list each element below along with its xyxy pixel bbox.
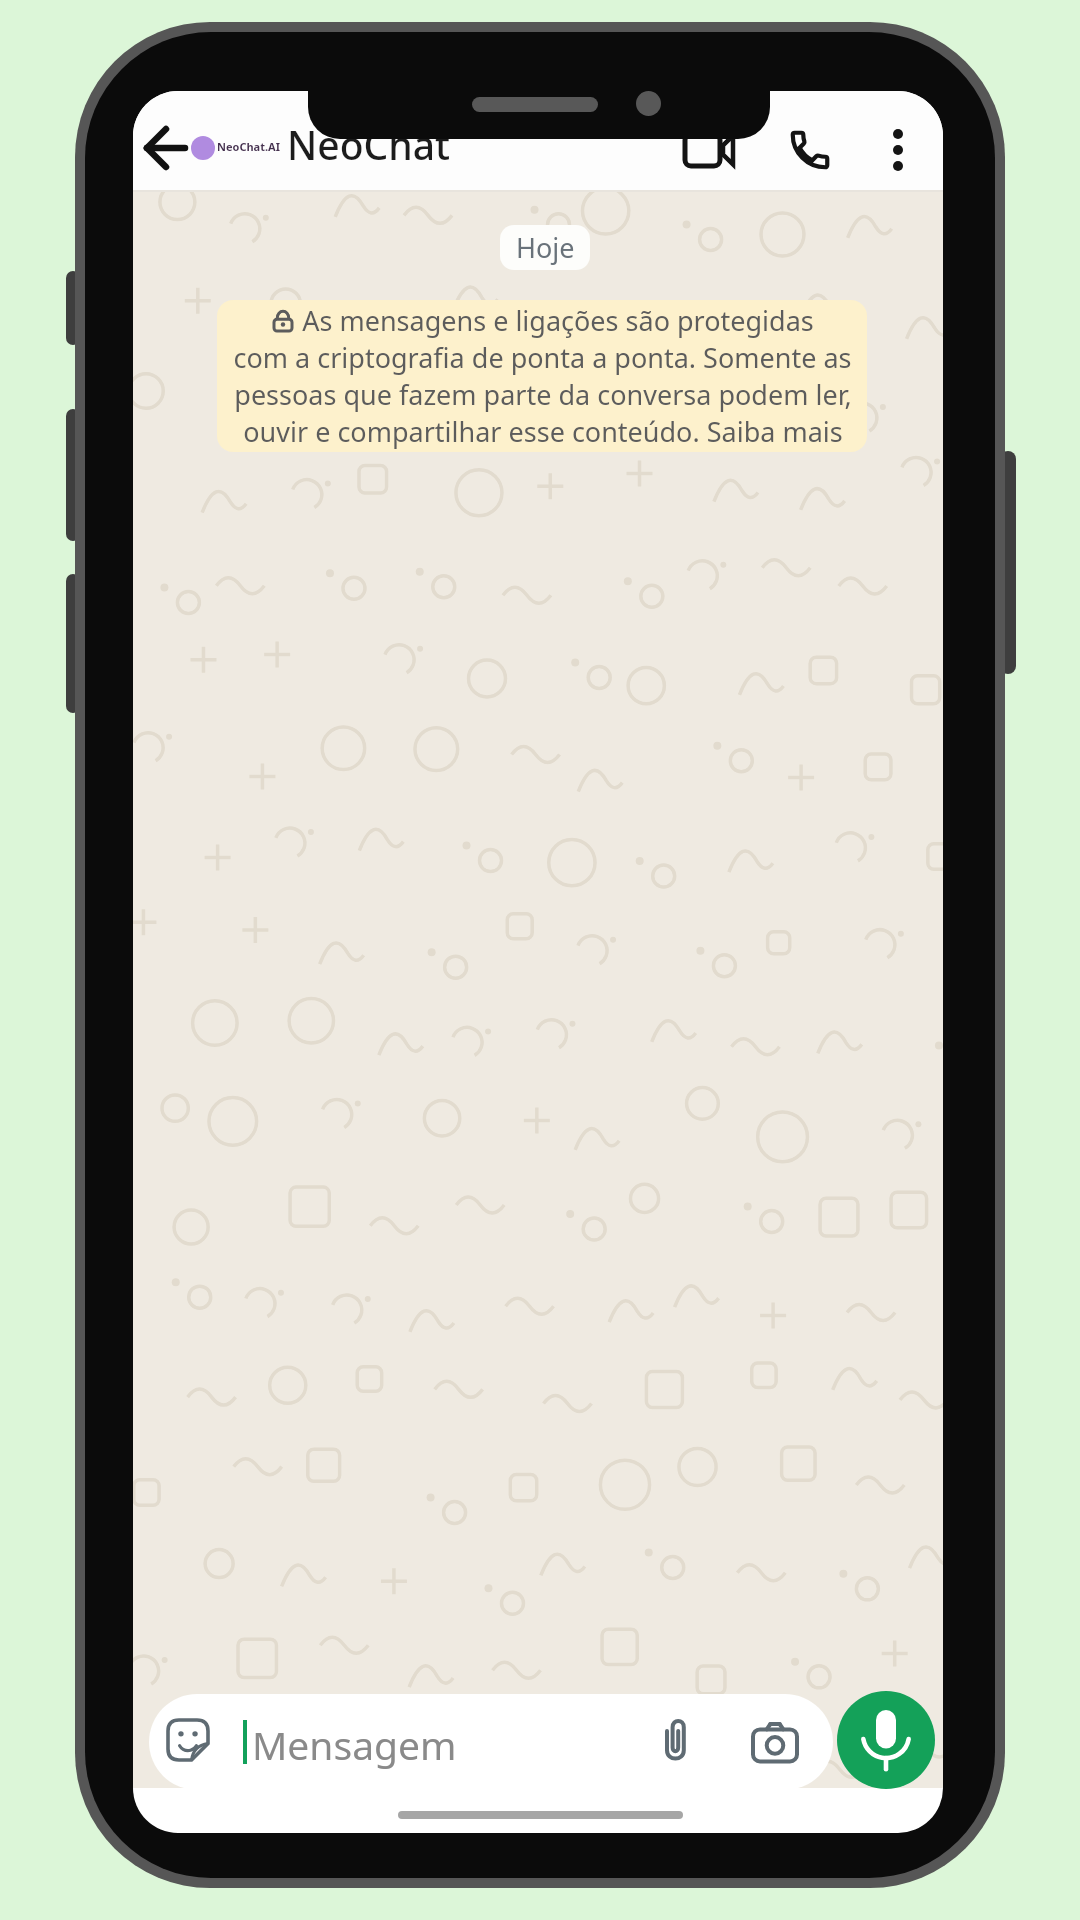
- button[interactable]: [837, 1691, 935, 1789]
- staticText: Hoje: [516, 229, 575, 266]
- staticText: NeoChat: [287, 118, 450, 171]
- staticText: ouvir e compartilhar esse conteúdo. Saib…: [243, 413, 843, 450]
- button[interactable]: [145, 128, 187, 168]
- staticText: pessoas que fazem parte da conversa pode…: [234, 376, 852, 413]
- button[interactable]: [787, 127, 833, 173]
- button[interactable]: As mensagens e ligações são protegidas: [217, 300, 867, 452]
- button[interactable]: Mensagem: [149, 1694, 833, 1790]
- staticText: Mensagem: [252, 1718, 457, 1771]
- staticText: NeoChat.AI: [217, 139, 280, 154]
- staticText: com a criptografia de ponta a ponta. Som…: [233, 339, 852, 376]
- button[interactable]: [885, 125, 911, 175]
- staticText: As mensagens e ligações são protegidas: [302, 302, 814, 339]
- button[interactable]: [685, 131, 735, 169]
